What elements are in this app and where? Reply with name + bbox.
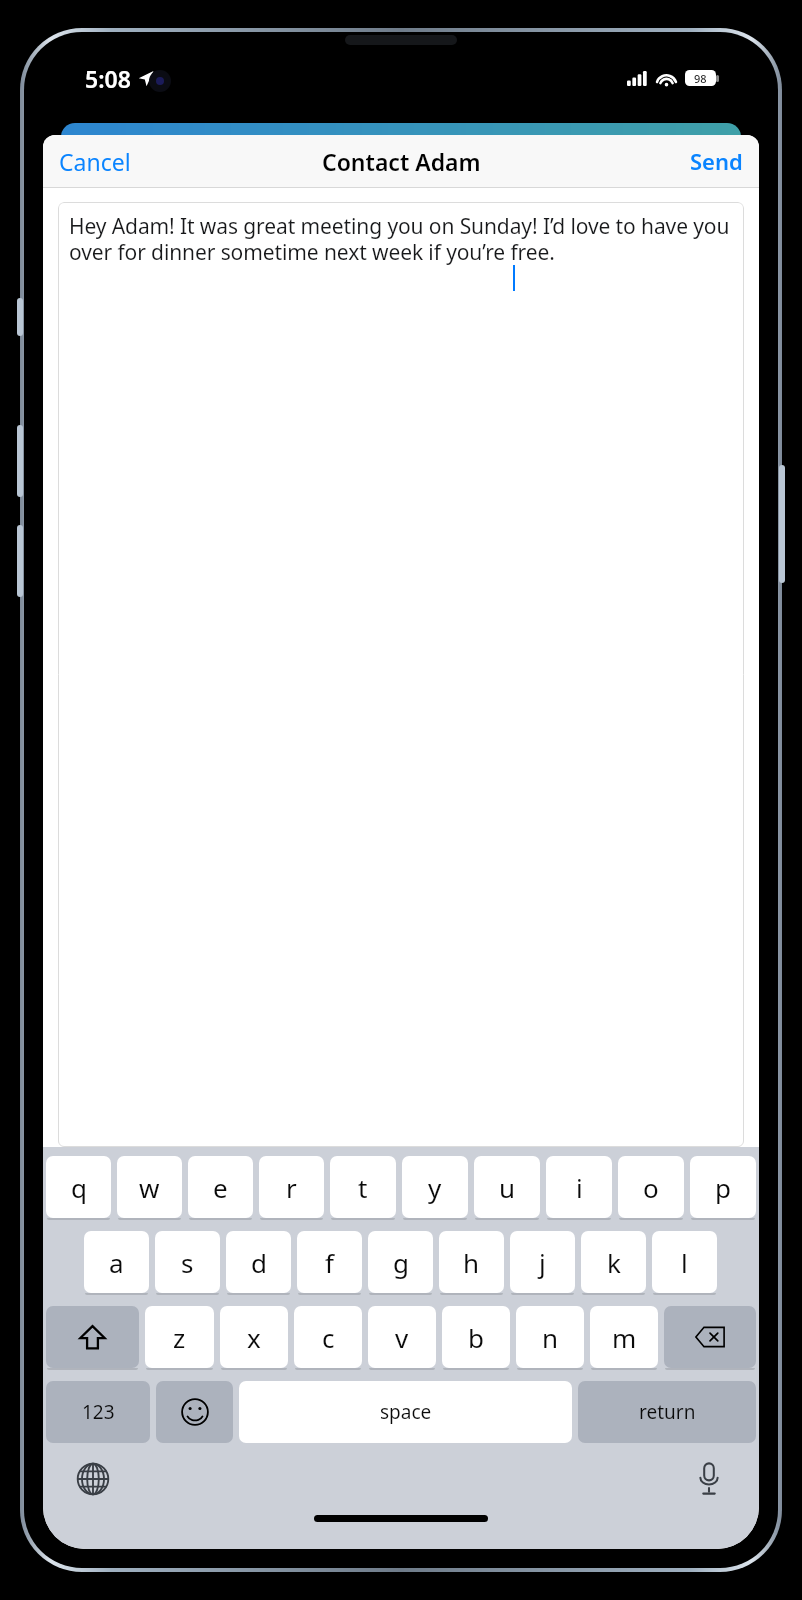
button[interactable]: n <box>516 1306 584 1368</box>
button[interactable]: Shift <box>46 1306 139 1368</box>
button[interactable]: i <box>546 1156 612 1218</box>
staticText: t <box>358 1170 368 1205</box>
staticText: w <box>139 1170 160 1205</box>
staticText: o <box>643 1170 659 1205</box>
button[interactable]: d <box>226 1231 291 1293</box>
button[interactable]: c <box>294 1306 362 1368</box>
staticText: a <box>109 1245 124 1280</box>
staticText: Send <box>690 146 743 176</box>
staticText: d <box>251 1245 267 1280</box>
staticText: r <box>286 1170 297 1205</box>
staticText: j <box>539 1245 546 1280</box>
button[interactable]: l <box>652 1231 717 1293</box>
staticText: Cancel <box>59 146 131 177</box>
button[interactable]: Dictation <box>687 1457 731 1501</box>
button[interactable]: w <box>117 1156 182 1218</box>
button[interactable]: g <box>368 1231 433 1293</box>
button[interactable]: return <box>578 1381 756 1443</box>
staticText: h <box>463 1245 480 1280</box>
button[interactable]: s <box>155 1231 220 1293</box>
button[interactable]: q <box>46 1156 111 1218</box>
button[interactable]: z <box>145 1306 214 1368</box>
button[interactable]: a <box>84 1231 149 1293</box>
staticText: c <box>322 1320 335 1355</box>
button[interactable]: Hey Adam! It was great meeting you on Su… <box>58 202 744 1147</box>
button[interactable]: Cancel <box>43 138 147 185</box>
staticText: z <box>173 1320 186 1355</box>
button[interactable]: u <box>474 1156 540 1218</box>
staticText: return <box>639 1399 696 1425</box>
staticText: 123 <box>82 1399 115 1425</box>
staticText: p <box>715 1170 731 1205</box>
button[interactable]: space <box>239 1381 572 1443</box>
staticText: 98 <box>694 71 707 86</box>
staticText: Contact Adam <box>322 146 481 177</box>
button[interactable]: 123 <box>46 1381 150 1443</box>
staticText: s <box>181 1245 194 1280</box>
staticText: l <box>681 1245 688 1280</box>
staticText: y <box>428 1170 442 1205</box>
button[interactable]: j <box>510 1231 575 1293</box>
button[interactable]: t <box>330 1156 396 1218</box>
staticText: Hey Adam! It was great meeting you on Su… <box>69 212 744 266</box>
button[interactable]: h <box>439 1231 504 1293</box>
button[interactable]: m <box>590 1306 658 1368</box>
staticText: b <box>468 1320 484 1355</box>
staticText: v <box>395 1320 409 1355</box>
button[interactable]: o <box>618 1156 684 1218</box>
button[interactable]: b <box>442 1306 510 1368</box>
staticText: u <box>499 1170 516 1205</box>
button[interactable]: Change keyboard <box>71 1457 115 1501</box>
staticText: f <box>325 1245 334 1280</box>
staticText: g <box>393 1245 409 1280</box>
button[interactable]: k <box>581 1231 646 1293</box>
staticText: n <box>542 1320 559 1355</box>
staticText: e <box>213 1170 228 1205</box>
button[interactable]: r <box>259 1156 324 1218</box>
staticText: 5:08 <box>85 63 131 94</box>
staticText: x <box>247 1320 261 1355</box>
button[interactable]: v <box>368 1306 436 1368</box>
staticText: m <box>612 1320 637 1355</box>
button[interactable]: Backspace <box>664 1306 756 1368</box>
button[interactable]: Send <box>674 138 759 184</box>
button[interactable]: e <box>188 1156 253 1218</box>
button[interactable]: f <box>297 1231 362 1293</box>
staticText: k <box>607 1245 621 1280</box>
button[interactable]: Emoji <box>156 1381 233 1443</box>
button[interactable]: p <box>690 1156 756 1218</box>
staticText: space <box>380 1399 432 1425</box>
staticText: q <box>71 1170 87 1205</box>
button[interactable]: y <box>402 1156 468 1218</box>
staticText: i <box>576 1170 583 1205</box>
button[interactable]: x <box>220 1306 288 1368</box>
